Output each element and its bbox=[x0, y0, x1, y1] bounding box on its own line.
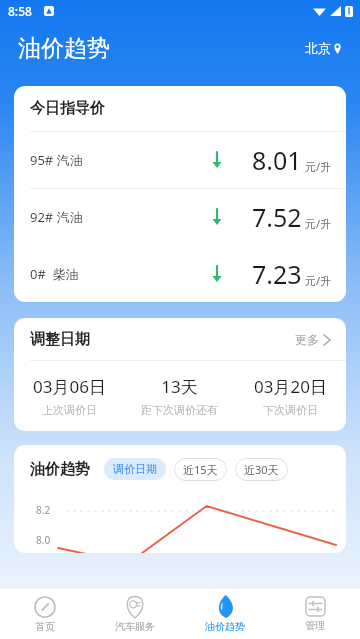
other: 汽车服务 bbox=[124, 596, 146, 618]
button[interactable]: 管理 bbox=[270, 589, 360, 639]
staticText: 油价趋势 bbox=[18, 34, 110, 63]
button[interactable]: 首页 bbox=[0, 589, 90, 639]
button[interactable]: 汽车服务 bbox=[90, 589, 180, 639]
staticText: 元/升 bbox=[305, 159, 332, 174]
staticText: 8:58 bbox=[8, 3, 32, 19]
staticText: 更多 bbox=[295, 332, 319, 347]
staticText: 油价趋势 bbox=[205, 620, 245, 633]
other: 油价趋势 bbox=[214, 595, 237, 618]
staticText: 距下次调价还有 bbox=[141, 403, 218, 417]
staticText: 95# 汽油 bbox=[30, 151, 83, 169]
staticText: 管理 bbox=[305, 619, 325, 632]
staticText: 调价日期 bbox=[113, 462, 157, 476]
staticText: 调整日期 bbox=[30, 330, 90, 349]
staticText: 03月20日 bbox=[254, 375, 327, 398]
button[interactable]: 近30天 bbox=[235, 458, 288, 481]
button[interactable]: 北京 bbox=[301, 36, 346, 60]
button[interactable]: 更多 bbox=[291, 328, 334, 351]
staticText: 近15天 bbox=[183, 462, 218, 477]
staticText: 0# 柴油 bbox=[30, 265, 79, 283]
button[interactable]: 92# 汽油 bbox=[14, 188, 346, 245]
staticText: 元/升 bbox=[305, 216, 332, 231]
staticText: 03月06日 bbox=[33, 375, 106, 398]
other: 管理 bbox=[305, 596, 326, 617]
button[interactable]: 95# 汽油 bbox=[14, 131, 346, 188]
staticText: 8.2 bbox=[36, 503, 51, 517]
staticText: 92# 汽油 bbox=[30, 208, 83, 226]
staticText: 7.23 bbox=[252, 257, 302, 291]
staticText: 汽车服务 bbox=[115, 620, 155, 633]
other: 首页 bbox=[34, 596, 56, 618]
staticText: 今日指导价 bbox=[30, 99, 105, 118]
staticText: 北京 bbox=[305, 40, 331, 56]
button[interactable]: 近15天 bbox=[174, 458, 227, 481]
staticText: 首页 bbox=[35, 620, 55, 633]
staticText: 油价趋势 bbox=[30, 460, 90, 479]
staticText: 8.0 bbox=[36, 533, 51, 547]
staticText: 7.52 bbox=[252, 200, 302, 234]
button[interactable]: 调价日期 bbox=[104, 458, 166, 480]
staticText: 下次调价日 bbox=[263, 403, 318, 417]
staticText: 8.01 bbox=[252, 143, 302, 177]
staticText: 近30天 bbox=[244, 462, 279, 477]
button[interactable]: 油价趋势 bbox=[180, 589, 270, 639]
staticText: 13天 bbox=[161, 375, 198, 398]
staticText: 上次调价日 bbox=[42, 403, 97, 417]
staticText: 元/升 bbox=[305, 273, 332, 288]
button[interactable]: 0# 柴油 bbox=[14, 245, 346, 302]
